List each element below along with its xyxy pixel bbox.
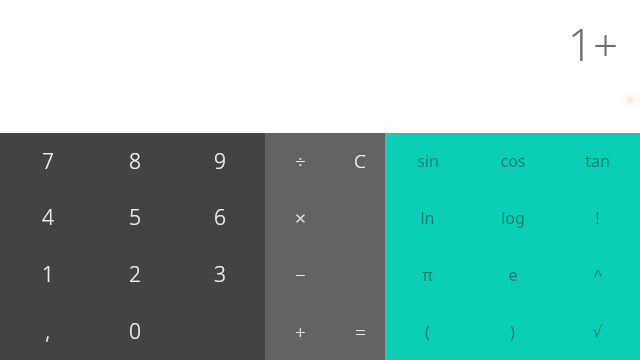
staticText: 3	[214, 260, 226, 289]
staticText: ×	[295, 205, 306, 231]
staticText: !	[595, 207, 600, 229]
staticText: ln	[420, 207, 435, 229]
staticText: =	[355, 319, 366, 345]
button[interactable]: 4	[0, 189, 95, 246]
staticText: 7	[42, 147, 54, 176]
button[interactable]: 7	[0, 133, 95, 189]
button[interactable]: 6	[175, 189, 265, 246]
staticText: ÷	[295, 148, 306, 174]
staticText: ^	[593, 264, 603, 286]
button[interactable]: −	[265, 246, 335, 303]
button[interactable]: 8	[95, 133, 175, 189]
button[interactable]: 2	[95, 246, 175, 303]
button[interactable]: 5	[95, 189, 175, 246]
staticText: 1	[42, 260, 54, 289]
button[interactable]: 9	[175, 133, 265, 189]
button[interactable]: ,	[0, 303, 95, 360]
button[interactable]: +	[265, 303, 335, 360]
staticText: 4	[42, 203, 54, 232]
staticText: log	[501, 207, 525, 229]
staticText: sin	[417, 150, 439, 172]
button[interactable]: )	[470, 303, 555, 360]
staticText: √	[592, 322, 603, 341]
button[interactable]: π	[385, 246, 470, 303]
staticText: π	[422, 264, 433, 286]
button[interactable]: ^	[555, 246, 640, 303]
staticText: 6	[214, 203, 226, 232]
button[interactable]: 0	[95, 303, 175, 360]
staticText: −	[295, 262, 306, 288]
staticText: 8	[129, 147, 141, 176]
button[interactable]: ln	[385, 189, 470, 246]
staticText: ,	[45, 317, 50, 346]
button[interactable]: 3	[175, 246, 265, 303]
staticText: +	[295, 319, 306, 345]
button[interactable]: log	[470, 189, 555, 246]
button[interactable]: ×	[265, 189, 335, 246]
button[interactable]: cos	[470, 133, 555, 189]
button[interactable]: 1	[0, 246, 95, 303]
button[interactable]: tan	[555, 133, 640, 189]
staticText: tan	[585, 150, 610, 172]
button[interactable]: !	[555, 189, 640, 246]
button[interactable]: =	[335, 303, 385, 360]
button[interactable]: C	[335, 133, 385, 189]
staticText: e	[508, 264, 518, 286]
staticText: 1+	[567, 14, 618, 74]
button[interactable]: e	[470, 246, 555, 303]
button[interactable]: (	[385, 303, 470, 360]
staticText: 9	[214, 147, 226, 176]
button[interactable]: ÷	[265, 133, 335, 189]
staticText: cos	[500, 150, 526, 172]
staticText: 0	[129, 317, 141, 346]
button[interactable]: sin	[385, 133, 470, 189]
staticText: C	[354, 148, 366, 174]
staticText: )	[510, 321, 515, 343]
button[interactable]: √	[555, 303, 640, 360]
staticText: 5	[129, 203, 141, 232]
staticText: (	[425, 321, 430, 343]
staticText: 2	[129, 260, 141, 289]
